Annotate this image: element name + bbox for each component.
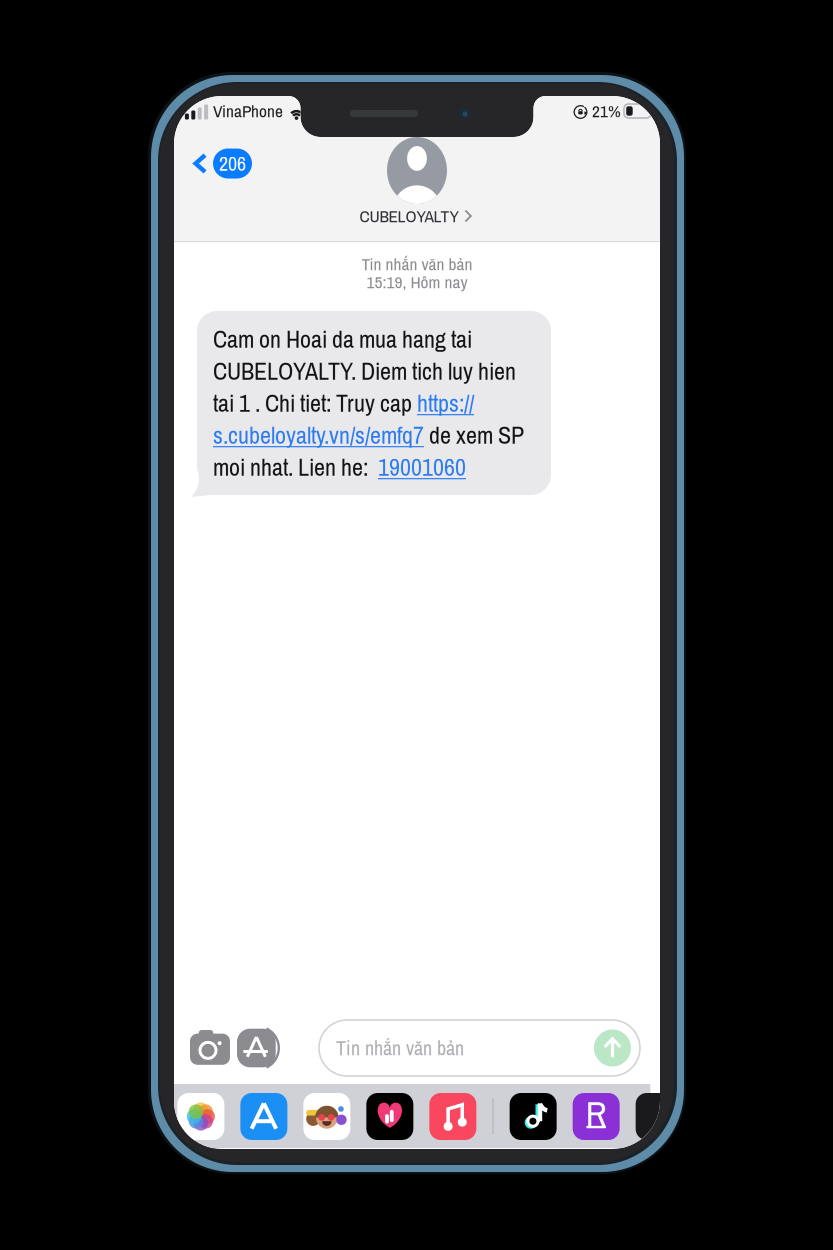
- button[interactable]: Rakuten: [573, 1093, 620, 1140]
- button[interactable]: Send: [594, 1029, 631, 1066]
- staticText: Tin nhắn văn bản: [361, 252, 472, 276]
- button[interactable]: Fitness: [366, 1093, 413, 1140]
- button[interactable]: Photos: [177, 1093, 224, 1140]
- button[interactable]: CUBELOYALTY: [352, 137, 482, 228]
- button[interactable]: App Store: [237, 1026, 281, 1070]
- staticText: R: [586, 1090, 607, 1137]
- staticText: https://: [417, 387, 474, 419]
- button[interactable]: Camera: [190, 1028, 230, 1068]
- staticText: Tin nhắn văn bản: [336, 1034, 464, 1061]
- button[interactable]: 206: [187, 142, 256, 185]
- button[interactable]: Music: [429, 1093, 476, 1140]
- button[interactable]: More apps: [636, 1093, 683, 1140]
- staticText: CUBELOYALTY. Diem tich luy hien: [213, 355, 516, 387]
- staticText: 206: [219, 150, 246, 177]
- staticText: Cam on Hoai da mua hang tai: [213, 323, 472, 355]
- staticText: tai 1 . Chi tiet: Truy cap: [213, 387, 417, 419]
- staticText: VinaPhone: [209, 99, 283, 123]
- button[interactable]: Memoji: [303, 1093, 350, 1140]
- staticText: moi nhat. Lien he:: [213, 451, 378, 483]
- staticText: de xem SP: [424, 419, 524, 451]
- staticText: 15:19, Hôm nay: [366, 270, 467, 294]
- staticText: 19001060: [378, 451, 466, 483]
- button[interactable]: TikTok: [510, 1093, 557, 1140]
- button[interactable]: App Store: [240, 1093, 287, 1140]
- staticText: 21%: [588, 99, 621, 123]
- staticText: s.cubeloyalty.vn/s/emfq7: [213, 419, 424, 451]
- staticText: CUBELOYALTY: [359, 204, 458, 228]
